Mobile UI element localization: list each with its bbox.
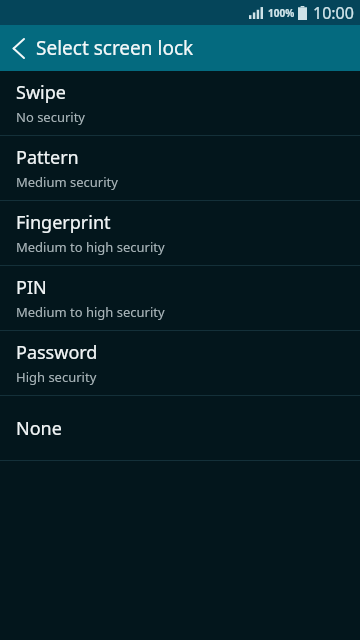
- button[interactable]: Swipe: [0, 71, 360, 135]
- staticText: No security: [16, 108, 86, 126]
- staticText: Fingerprint: [16, 210, 111, 235]
- button[interactable]: Pattern: [0, 136, 360, 200]
- staticText: Medium security: [16, 173, 118, 191]
- staticText: None: [16, 416, 62, 441]
- staticText: Medium to high security: [16, 238, 165, 256]
- staticText: Medium to high security: [16, 303, 165, 321]
- staticText: Select screen lock: [36, 35, 194, 61]
- button[interactable]: PIN: [0, 266, 360, 330]
- button[interactable]: Password: [0, 331, 360, 395]
- staticText: Pattern: [16, 145, 79, 170]
- staticText: High security: [16, 368, 97, 386]
- button[interactable]: Fingerprint: [0, 201, 360, 265]
- staticText: PIN: [16, 275, 47, 300]
- staticText: 100%: [268, 6, 295, 20]
- staticText: Password: [16, 340, 98, 365]
- staticText: Swipe: [16, 80, 66, 105]
- button[interactable]: None: [0, 396, 360, 460]
- button[interactable]: Back: [0, 30, 36, 66]
- staticText: 10:00: [313, 2, 354, 24]
